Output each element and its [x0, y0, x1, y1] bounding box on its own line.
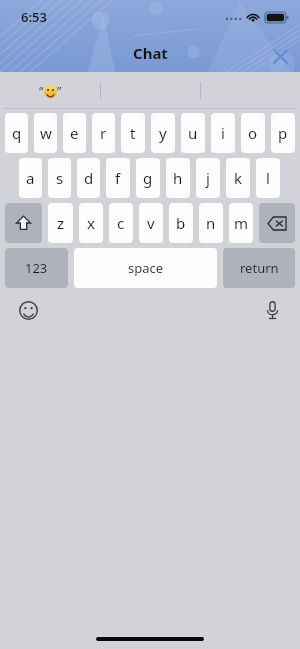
- staticText: l: [266, 168, 270, 188]
- staticText: b: [176, 213, 186, 233]
- button[interactable]: t: [121, 113, 145, 153]
- button[interactable]: v: [139, 203, 163, 243]
- button[interactable]: Emoji keyboard: [13, 295, 43, 325]
- button[interactable]: [201, 72, 300, 109]
- staticText: j: [206, 168, 210, 188]
- button[interactable]: Backspace: [259, 203, 295, 243]
- button[interactable]: “: [0, 72, 100, 109]
- button[interactable]: m: [229, 203, 253, 243]
- staticText: z: [57, 213, 65, 233]
- staticText: q: [12, 123, 22, 143]
- button[interactable]: a: [19, 158, 42, 198]
- button[interactable]: f: [106, 158, 130, 198]
- staticText: 6:53: [21, 8, 47, 26]
- staticText: return: [240, 259, 279, 277]
- button[interactable]: [101, 72, 200, 109]
- staticText: d: [84, 168, 94, 188]
- button[interactable]: 123: [5, 248, 68, 288]
- staticText: m: [234, 213, 249, 233]
- staticText: p: [278, 123, 288, 143]
- button[interactable]: b: [169, 203, 193, 243]
- staticText: g: [143, 168, 153, 188]
- staticText: Chat: [133, 43, 168, 63]
- button[interactable]: j: [196, 158, 220, 198]
- button[interactable]: Dictate: [257, 295, 287, 325]
- staticText: y: [159, 123, 167, 143]
- button[interactable]: d: [77, 158, 100, 198]
- button[interactable]: e: [63, 113, 86, 153]
- staticText: c: [117, 213, 125, 233]
- button[interactable]: k: [226, 158, 250, 198]
- button[interactable]: w: [34, 113, 57, 153]
- staticText: n: [206, 213, 216, 233]
- staticText: i: [221, 123, 225, 143]
- staticText: “: [39, 83, 44, 99]
- staticText: h: [173, 168, 183, 188]
- staticText: u: [188, 123, 198, 143]
- button[interactable]: x: [79, 203, 103, 243]
- button[interactable]: r: [92, 113, 115, 153]
- button[interactable]: q: [5, 113, 28, 153]
- staticText: space: [128, 259, 164, 277]
- button[interactable]: c: [109, 203, 133, 243]
- staticText: v: [147, 213, 155, 233]
- button[interactable]: l: [256, 158, 280, 198]
- button[interactable]: Close chat: [265, 41, 295, 71]
- staticText: f: [115, 168, 121, 188]
- button[interactable]: o: [241, 113, 265, 153]
- button[interactable]: space: [74, 248, 217, 288]
- staticText: ”: [57, 83, 62, 99]
- staticText: x: [87, 213, 95, 233]
- button[interactable]: i: [211, 113, 235, 153]
- button[interactable]: u: [181, 113, 205, 153]
- button[interactable]: return: [223, 248, 295, 288]
- staticText: a: [26, 168, 35, 188]
- staticText: 123: [25, 259, 48, 277]
- button[interactable]: z: [48, 203, 73, 243]
- button[interactable]: Shift: [5, 203, 42, 243]
- staticText: r: [100, 123, 107, 143]
- staticText: k: [234, 168, 243, 188]
- button[interactable]: y: [151, 113, 175, 153]
- staticText: w: [40, 123, 52, 143]
- button[interactable]: p: [271, 113, 295, 153]
- staticText: s: [56, 168, 64, 188]
- button[interactable]: n: [199, 203, 223, 243]
- staticText: t: [130, 123, 136, 143]
- button[interactable]: s: [48, 158, 71, 198]
- staticText: o: [248, 123, 258, 143]
- button[interactable]: g: [136, 158, 160, 198]
- staticText: e: [70, 123, 79, 143]
- button[interactable]: h: [166, 158, 190, 198]
